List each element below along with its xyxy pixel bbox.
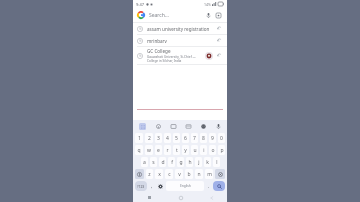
staticText: ?123 xyxy=(137,184,145,189)
staticText: 7 xyxy=(193,135,196,142)
button[interactable]: g xyxy=(177,157,184,167)
button[interactable]: Sticker xyxy=(181,122,196,131)
staticText: g xyxy=(179,159,183,166)
staticText: b xyxy=(187,171,191,178)
button[interactable]: k xyxy=(204,157,211,167)
button[interactable]: Insert suggestion xyxy=(216,25,223,32)
staticText: 3 xyxy=(157,135,160,142)
button[interactable]: Insert suggestion xyxy=(216,37,223,44)
staticText: q xyxy=(137,147,141,154)
button[interactable]: 7 xyxy=(191,133,198,143)
button[interactable]: h xyxy=(186,157,193,167)
button[interactable]: Emoji xyxy=(196,122,211,131)
button[interactable]: Settings xyxy=(156,181,165,191)
staticText: k xyxy=(206,159,209,166)
staticText: a xyxy=(143,159,146,166)
button[interactable]: 6 xyxy=(182,133,189,143)
staticText: w xyxy=(147,147,151,154)
button[interactable]: x xyxy=(155,169,163,179)
staticText: Search... xyxy=(149,12,169,19)
staticText: l xyxy=(216,159,218,166)
button[interactable]: w xyxy=(145,145,153,155)
button[interactable]: y xyxy=(182,145,189,155)
button[interactable]: 1 xyxy=(135,133,143,143)
staticText: 2 xyxy=(148,135,151,142)
button[interactable]: Period xyxy=(205,181,212,191)
staticText: 9 xyxy=(211,135,214,142)
button[interactable]: z xyxy=(146,169,153,179)
button[interactable]: t xyxy=(173,145,180,155)
button[interactable]: Search xyxy=(213,181,225,191)
button[interactable]: Recents xyxy=(133,193,165,202)
button[interactable]: GIF xyxy=(166,122,181,131)
staticText: 5 xyxy=(175,135,178,142)
staticText: f xyxy=(171,159,173,166)
staticText: GC College xyxy=(147,48,171,54)
button[interactable]: 5 xyxy=(173,133,180,143)
staticText: 9:47 xyxy=(136,2,144,7)
staticText: . xyxy=(208,183,210,190)
staticText: s xyxy=(152,159,155,166)
button[interactable]: e xyxy=(155,145,162,155)
staticText: assam university registration xyxy=(147,26,210,32)
button[interactable]: 3 xyxy=(155,133,162,143)
staticText: i xyxy=(203,147,205,154)
button[interactable]: p xyxy=(218,145,225,155)
button[interactable]: 9 xyxy=(209,133,216,143)
button[interactable]: i xyxy=(200,145,207,155)
button[interactable]: m xyxy=(205,169,213,179)
staticText: 4 xyxy=(166,135,169,142)
button[interactable]: r xyxy=(164,145,171,155)
button[interactable]: s xyxy=(150,157,157,167)
button[interactable]: Google Lens xyxy=(214,11,223,20)
staticText: Gauwahati University, Si-Chief — College… xyxy=(147,55,196,63)
button[interactable]: Home xyxy=(165,193,196,202)
button[interactable]: mrinbarv xyxy=(133,35,227,46)
staticText: 8 xyxy=(202,135,205,142)
staticText: p xyxy=(220,147,224,154)
button[interactable]: a xyxy=(141,157,148,167)
button[interactable]: q xyxy=(135,145,143,155)
staticText: j xyxy=(198,159,200,166)
button[interactable]: Search... xyxy=(133,8,227,22)
staticText: e xyxy=(157,147,160,154)
staticText: r xyxy=(166,147,169,154)
button[interactable]: d xyxy=(159,157,166,167)
button[interactable]: 4 xyxy=(164,133,171,143)
button[interactable]: Comma xyxy=(148,181,156,191)
staticText: 14% xyxy=(204,2,211,7)
staticText: n xyxy=(197,171,201,178)
button[interactable]: Key xyxy=(135,169,144,179)
button[interactable]: b xyxy=(185,169,193,179)
button[interactable]: Keyboard settings xyxy=(135,123,149,130)
button[interactable]: GC College xyxy=(133,47,227,64)
staticText: v xyxy=(178,171,181,178)
button[interactable]: Theme xyxy=(150,122,166,131)
button[interactable]: n xyxy=(195,169,203,179)
button[interactable]: j xyxy=(195,157,202,167)
button[interactable]: Voice search xyxy=(204,11,213,20)
staticText: t xyxy=(176,147,178,154)
button[interactable]: assam university registration xyxy=(133,23,227,34)
button[interactable]: Key xyxy=(215,169,225,179)
button[interactable]: c xyxy=(165,169,173,179)
staticText: h xyxy=(188,159,192,166)
button[interactable]: 0 xyxy=(218,133,225,143)
staticText: z xyxy=(148,171,151,178)
button[interactable]: v xyxy=(175,169,183,179)
button[interactable]: o xyxy=(209,145,216,155)
button[interactable]: Insert suggestion xyxy=(216,52,223,59)
button[interactable]: l xyxy=(213,157,220,167)
button[interactable]: Voice xyxy=(211,122,226,131)
button[interactable]: Space xyxy=(166,181,204,191)
button[interactable]: f xyxy=(168,157,175,167)
staticText: u xyxy=(193,147,197,154)
button[interactable]: ?123 xyxy=(135,181,147,191)
button[interactable]: 8 xyxy=(200,133,207,143)
staticText: English xyxy=(180,184,191,188)
button[interactable]: 2 xyxy=(145,133,153,143)
button[interactable]: u xyxy=(191,145,198,155)
staticText: o xyxy=(211,147,215,154)
staticText: d xyxy=(161,159,165,166)
